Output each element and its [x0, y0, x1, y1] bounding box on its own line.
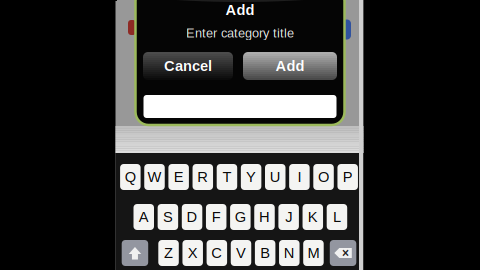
button[interactable]: K	[302, 204, 323, 230]
button[interactable]: U	[265, 164, 285, 190]
staticText: Add	[225, 2, 254, 18]
button[interactable]: J	[278, 204, 299, 230]
staticText: K	[308, 209, 318, 225]
staticText: Q	[125, 169, 136, 185]
staticText: F	[212, 209, 221, 225]
staticText: R	[197, 169, 208, 185]
staticText: I	[297, 169, 301, 185]
button[interactable]: M	[303, 240, 324, 266]
button[interactable]: B	[255, 240, 275, 266]
staticText: E	[174, 169, 184, 185]
staticText: Y	[246, 169, 256, 185]
button[interactable]: I	[289, 164, 310, 190]
button[interactable]: S	[158, 204, 178, 230]
staticText: S	[163, 209, 173, 225]
button[interactable]: Cancel	[143, 52, 233, 80]
button[interactable]: V	[231, 240, 251, 266]
button[interactable]: H	[254, 204, 275, 230]
staticText: L	[333, 209, 341, 225]
button[interactable]: E	[168, 164, 189, 190]
staticText: T	[222, 169, 231, 185]
staticText: U	[270, 169, 281, 185]
staticText: H	[259, 209, 270, 225]
staticText: X	[188, 245, 198, 261]
button[interactable]: L	[327, 204, 347, 230]
button[interactable]: R	[192, 164, 213, 190]
button[interactable]: O	[313, 164, 334, 190]
button[interactable]: A	[133, 204, 154, 230]
staticText: G	[235, 209, 246, 225]
staticText: D	[187, 209, 198, 225]
button[interactable]: Add	[243, 52, 337, 80]
staticText: O	[318, 169, 329, 185]
button[interactable]: N	[279, 240, 300, 266]
staticText: W	[147, 169, 161, 185]
staticText: M	[307, 245, 319, 261]
staticText: Cancel	[164, 58, 212, 74]
staticText: Z	[164, 245, 173, 261]
button[interactable]: Shift	[122, 240, 148, 266]
staticText: P	[343, 169, 353, 185]
button[interactable]: P	[337, 164, 358, 190]
staticText: Enter category title	[186, 26, 294, 40]
staticText: J	[285, 209, 292, 225]
staticText: C	[211, 245, 222, 261]
staticText: Add	[275, 58, 304, 74]
button[interactable]: G	[230, 204, 251, 230]
staticText: ×	[342, 246, 349, 260]
button[interactable]: C	[207, 240, 227, 266]
staticText: B	[260, 245, 270, 261]
button[interactable]: Q	[120, 164, 141, 190]
button[interactable]: X	[182, 240, 203, 266]
button[interactable]: F	[206, 204, 226, 230]
button[interactable]: T	[217, 164, 237, 190]
staticText: V	[236, 245, 246, 261]
button[interactable]: Y	[241, 164, 261, 190]
staticText: A	[139, 209, 149, 225]
button[interactable]: W	[144, 164, 165, 190]
button[interactable]: Z	[158, 240, 179, 266]
button[interactable]: Delete	[330, 240, 356, 266]
button[interactable]: D	[182, 204, 202, 230]
staticText: N	[284, 245, 295, 261]
